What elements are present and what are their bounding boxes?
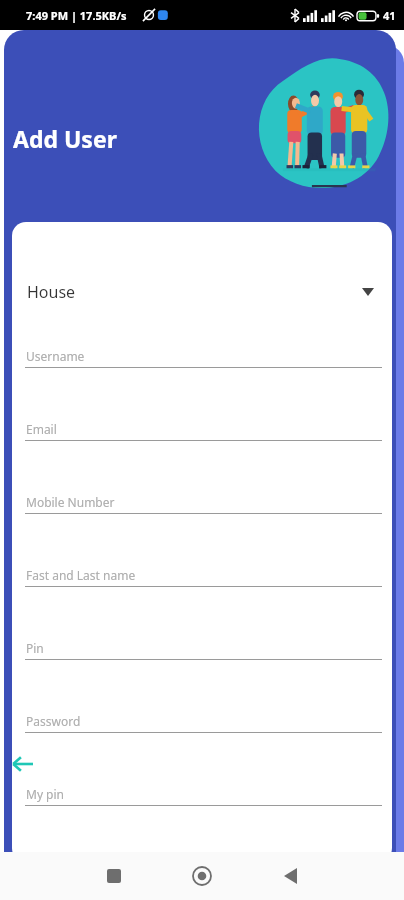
staticText: 41 <box>383 8 396 23</box>
staticText: Mobile Number <box>26 494 115 510</box>
button[interactable]: Back <box>6 748 38 780</box>
staticText: House <box>27 281 76 303</box>
button[interactable]: Mobile Number <box>12 482 392 555</box>
button[interactable]: Password <box>12 701 392 774</box>
button[interactable]: Home <box>178 852 226 900</box>
staticText: Add User <box>13 123 117 154</box>
button[interactable]: Back <box>266 852 314 900</box>
button[interactable]: House <box>12 272 392 312</box>
button[interactable]: Pin <box>12 628 392 701</box>
button[interactable]: Recent apps <box>90 852 138 900</box>
button[interactable]: Username <box>12 336 392 409</box>
staticText: 7:49 PM | 17.5KB/s <box>26 8 127 23</box>
button[interactable]: Fast and Last name <box>12 555 392 628</box>
button[interactable]: My pin <box>12 774 392 847</box>
button[interactable]: Email <box>12 409 392 482</box>
staticText: Email <box>26 421 57 437</box>
staticText: Fast and Last name <box>26 567 136 583</box>
staticText: Pin <box>26 640 44 656</box>
staticText: Password <box>26 713 81 729</box>
staticText: Username <box>26 348 85 364</box>
staticText: My pin <box>26 786 65 802</box>
